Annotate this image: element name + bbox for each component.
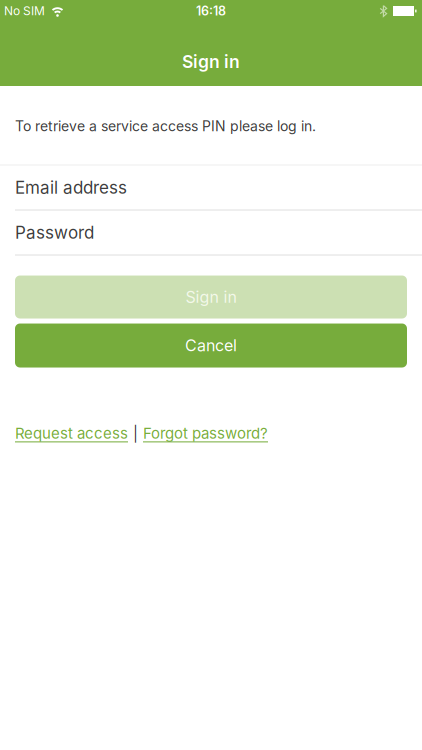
staticText: Email address: [15, 177, 127, 198]
staticText: Sign in: [182, 51, 240, 72]
staticText: |: [133, 424, 138, 442]
staticText: 16:18: [196, 4, 226, 18]
button[interactable]: Password: [0, 210, 422, 254]
button[interactable]: Request access: [15, 424, 128, 442]
staticText: Sign in: [185, 288, 236, 306]
staticText: To retrieve a service access PIN please …: [15, 118, 316, 134]
staticText: Request access: [15, 424, 128, 442]
staticText: Forgot password?: [143, 424, 268, 442]
staticText: No SIM: [4, 4, 45, 18]
button[interactable]: Sign in: [15, 275, 407, 318]
staticText: Cancel: [185, 336, 237, 355]
button[interactable]: Cancel: [15, 323, 407, 367]
button[interactable]: Email address: [0, 165, 422, 209]
staticText: Password: [15, 222, 94, 243]
button[interactable]: Forgot password?: [143, 424, 268, 442]
